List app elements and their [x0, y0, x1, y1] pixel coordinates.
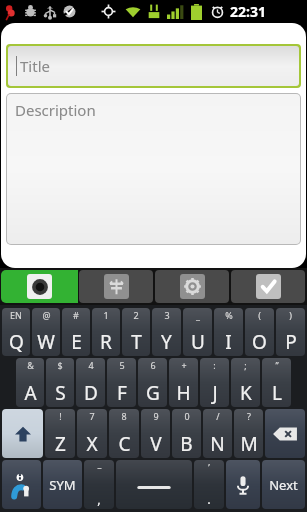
button[interactable]: ’	[194, 460, 224, 509]
staticText: )	[289, 309, 292, 321]
staticText: F	[117, 380, 127, 406]
button[interactable]: Voice input	[226, 460, 260, 509]
button[interactable]: 0	[172, 409, 201, 458]
button[interactable]: EN	[2, 308, 30, 356]
staticText: !	[59, 410, 62, 422]
button[interactable]: Delete	[265, 409, 305, 458]
staticText: +	[181, 359, 187, 371]
button[interactable]: :	[200, 358, 229, 407]
button[interactable]: Shift	[2, 409, 43, 458]
staticText: EN	[10, 309, 22, 321]
staticText: W	[37, 329, 55, 355]
staticText: Next	[269, 476, 298, 494]
staticText: K	[240, 380, 252, 406]
staticText: $	[57, 359, 63, 371]
staticText: N	[210, 431, 225, 457]
staticText: L	[272, 380, 282, 406]
button[interactable]: ?	[234, 409, 263, 458]
staticText: 1	[103, 309, 109, 321]
staticText: S	[55, 380, 66, 406]
button[interactable]: 9	[141, 409, 170, 458]
staticText: SYM	[49, 476, 76, 494]
staticText: I	[225, 329, 232, 355]
staticText: 9	[153, 410, 159, 422]
staticText: A	[24, 380, 37, 406]
staticText: _	[196, 309, 200, 321]
button[interactable]: 1	[92, 308, 120, 356]
staticText: J	[212, 380, 218, 406]
staticText: Z	[55, 431, 66, 457]
staticText: Y	[161, 329, 172, 355]
button[interactable]: +	[169, 358, 198, 407]
staticText: G	[146, 380, 160, 406]
staticText: C	[118, 431, 131, 457]
staticText: Title	[20, 56, 50, 76]
button[interactable]: &	[16, 358, 44, 407]
button[interactable]: _	[183, 308, 212, 356]
staticText: ?	[247, 410, 251, 422]
button[interactable]: %	[214, 308, 243, 356]
button[interactable]: –	[84, 460, 114, 509]
staticText: 4	[88, 359, 94, 371]
button[interactable]: 3	[152, 308, 181, 356]
button[interactable]: Title	[8, 46, 299, 86]
staticText: 3	[164, 309, 170, 321]
staticText: E	[71, 329, 82, 355]
button[interactable]: Keyboard info	[2, 460, 41, 509]
staticText: %	[225, 309, 233, 321]
staticText: .	[207, 490, 211, 508]
staticText: (	[258, 309, 261, 321]
staticText: U	[191, 329, 205, 355]
staticText: :	[213, 359, 216, 371]
button[interactable]: 8	[109, 409, 139, 458]
staticText: M	[240, 431, 258, 457]
button[interactable]: !	[45, 409, 75, 458]
button[interactable]: (	[245, 308, 274, 356]
staticText: 7	[89, 410, 95, 422]
staticText: 2	[133, 309, 139, 321]
button[interactable]: 7	[77, 409, 107, 458]
button[interactable]: 4	[76, 358, 105, 407]
button[interactable]: ;	[231, 358, 260, 407]
staticText: 6	[150, 359, 156, 371]
button[interactable]: Done	[231, 270, 305, 303]
button[interactable]: /	[203, 409, 232, 458]
button[interactable]: Next	[262, 460, 305, 509]
staticText: X	[86, 431, 98, 457]
button[interactable]: #	[62, 308, 90, 356]
staticText: P	[285, 329, 297, 355]
staticText: –	[97, 461, 102, 473]
button[interactable]: Signpost	[79, 270, 153, 303]
staticText: 5	[119, 359, 125, 371]
button[interactable]: @	[32, 308, 60, 356]
staticText: T	[131, 329, 142, 355]
button[interactable]: $	[46, 358, 74, 407]
button[interactable]: SYM	[43, 460, 82, 509]
staticText: D	[84, 380, 98, 406]
staticText: #	[73, 309, 79, 321]
staticText: H	[176, 380, 191, 406]
staticText: ;	[244, 359, 247, 371]
staticText: Q	[9, 329, 24, 355]
staticText: 22:31	[230, 2, 266, 21]
staticText: B	[180, 431, 193, 457]
staticText: O	[252, 329, 267, 355]
button[interactable]: 2	[122, 308, 150, 356]
button[interactable]: Space	[116, 460, 192, 509]
staticText: V	[150, 431, 162, 457]
staticText: ,	[97, 490, 101, 508]
staticText: ”	[275, 359, 279, 371]
button[interactable]: )	[276, 308, 305, 356]
staticText: &	[27, 359, 34, 371]
button[interactable]: Description	[7, 94, 300, 244]
staticText: ’	[208, 461, 210, 473]
staticText: @	[42, 309, 51, 321]
button[interactable]: Capture	[1, 270, 78, 303]
staticText: R	[100, 329, 112, 355]
button[interactable]: Settings	[155, 270, 229, 303]
button[interactable]: 5	[107, 358, 136, 407]
staticText: /	[216, 410, 220, 422]
button[interactable]: ”	[262, 358, 291, 407]
button[interactable]: 6	[138, 358, 167, 407]
staticText: 8	[121, 410, 127, 422]
